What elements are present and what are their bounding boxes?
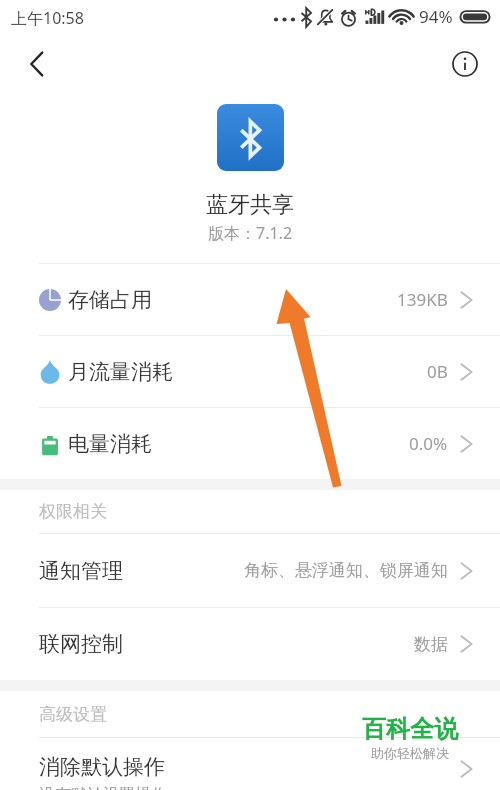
button[interactable]: 月流量消耗 <box>0 336 500 407</box>
staticText: 电量消耗 <box>68 431 152 457</box>
staticText: 存储占用 <box>68 287 152 313</box>
staticText: 版本：7.1.2 <box>208 222 293 244</box>
button[interactable]: 电量消耗 <box>0 408 500 479</box>
staticText: 百科全说 <box>362 714 458 744</box>
staticText: 通知管理 <box>39 558 123 584</box>
staticText: 月流量消耗 <box>68 359 173 385</box>
staticText: 上午10:58 <box>11 7 84 29</box>
staticText: 高级设置 <box>39 704 107 725</box>
staticText: 角标、悬浮通知、锁屏通知 <box>244 560 448 581</box>
button[interactable]: Info <box>444 43 486 85</box>
button[interactable]: 存储占用 <box>0 264 500 335</box>
staticText: 0B <box>427 360 448 383</box>
button[interactable]: 通知管理 <box>0 534 500 607</box>
staticText: 数据 <box>414 634 448 655</box>
staticText: 0.0% <box>409 432 448 455</box>
staticText: 助你轻松解决 <box>371 745 449 761</box>
button[interactable]: 联网控制 <box>0 608 500 680</box>
staticText: 权限相关 <box>39 501 107 522</box>
button[interactable]: 消除默认操作 <box>0 738 500 790</box>
staticText: 联网控制 <box>39 631 123 657</box>
button[interactable]: Back <box>16 43 58 85</box>
staticText: 94% <box>419 5 453 28</box>
staticText: 没有默认设置操作 <box>39 785 167 790</box>
staticText: 蓝牙共享 <box>206 191 294 219</box>
staticText: 消除默认操作 <box>39 754 165 780</box>
staticText: 139KB <box>397 288 448 311</box>
